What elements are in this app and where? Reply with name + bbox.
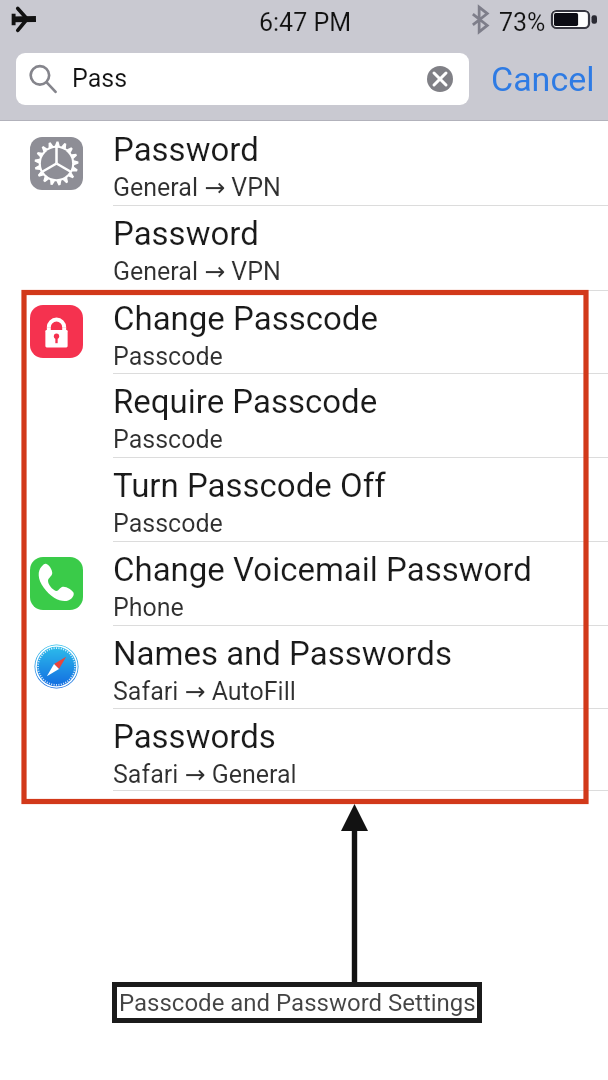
staticText: Passwords (113, 717, 276, 756)
staticText: Passcode (113, 342, 223, 371)
button[interactable]: Passwords (0, 708, 608, 792)
button[interactable]: Change Passcode (0, 290, 608, 373)
staticText: Phone (113, 593, 184, 622)
staticText: 73% (499, 8, 546, 37)
button[interactable]: Cancel (491, 59, 595, 99)
button[interactable]: Password (0, 121, 608, 205)
staticText: 6:47 PM (259, 8, 352, 37)
staticText: Password (113, 214, 259, 253)
staticText: Passcode (113, 425, 223, 454)
button[interactable]: Pass (16, 53, 469, 105)
staticText: Change Voicemail Password (113, 550, 532, 589)
button[interactable]: Require Passcode (0, 373, 608, 457)
staticText: Passcode (113, 509, 223, 538)
staticText: Safari → AutoFill (113, 677, 296, 706)
staticText: Turn Passcode Off (113, 466, 386, 505)
button[interactable]: Change Voicemail Password (0, 541, 608, 625)
staticText: Names and Passwords (113, 634, 452, 673)
button[interactable]: Password (0, 205, 608, 290)
staticText: Require Passcode (113, 382, 378, 421)
button[interactable]: Names and Passwords (0, 625, 608, 708)
staticText: Change Passcode (113, 299, 378, 338)
staticText: Password (113, 130, 259, 169)
staticText: General → VPN (113, 173, 281, 202)
button[interactable]: Turn Passcode Off (0, 457, 608, 541)
staticText: General → VPN (113, 257, 281, 286)
staticText: Passcode and Password Settings (119, 989, 476, 1017)
button[interactable]: Clear search text (427, 66, 453, 92)
staticText: Pass (72, 64, 128, 93)
staticText: Safari → General (113, 760, 297, 789)
staticText: Cancel (491, 59, 595, 99)
